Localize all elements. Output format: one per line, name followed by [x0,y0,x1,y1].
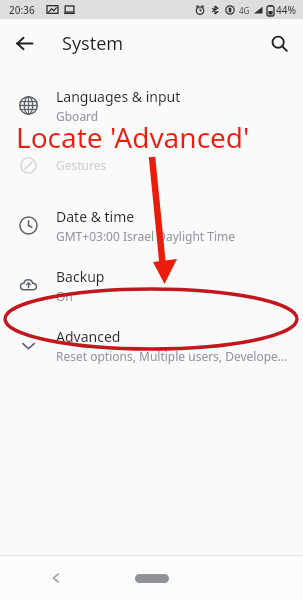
staticText: Gboard [56,108,99,124]
staticText: Gestures [56,157,107,173]
button[interactable]: Date and time [0,195,303,255]
staticText: System [62,31,124,56]
button[interactable]: Home [128,567,176,589]
staticText: 20:36 [9,3,35,17]
button[interactable]: Search [261,25,297,61]
staticText: Backup [56,267,105,286]
staticText: Locate 'Advanced' [16,118,250,156]
button[interactable]: Back [40,562,72,594]
staticText: GMT+03:00 Israel Daylight Time [56,228,236,244]
button[interactable]: Languages and input [0,75,303,135]
button[interactable]: Advanced [0,315,303,375]
staticText: Languages & input [56,87,181,106]
staticText: Advanced [56,327,121,346]
staticText: 4G [239,5,250,16]
staticText: Reset options, Multiple users, Developer… [56,348,289,364]
staticText: 44% [276,3,296,17]
staticText: On [56,288,73,304]
button[interactable]: Gestures [0,135,303,195]
button[interactable]: Backup [0,255,303,315]
staticText: Date & time [56,207,135,226]
button[interactable]: Back [6,25,42,61]
